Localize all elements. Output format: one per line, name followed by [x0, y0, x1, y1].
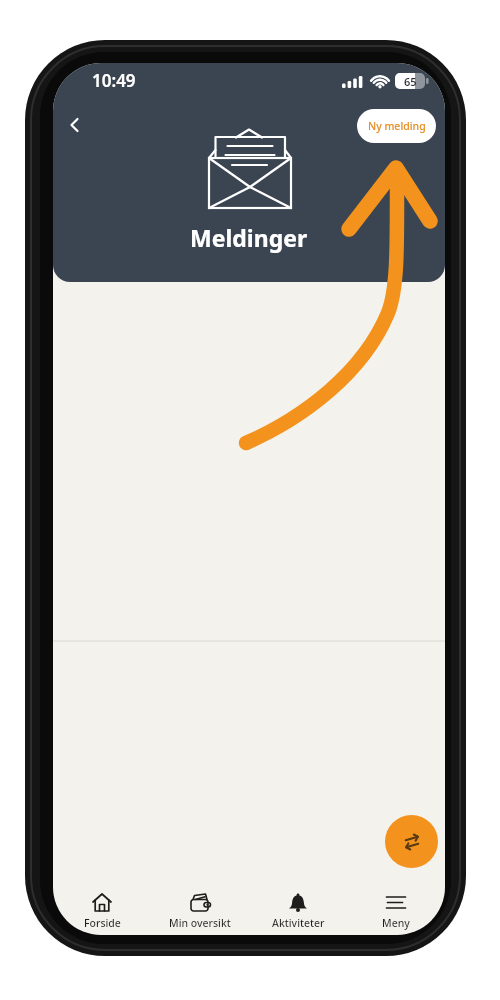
- staticText: 10:49: [92, 69, 136, 92]
- staticText: Meldinger: [190, 222, 308, 253]
- staticText: Meny: [382, 916, 410, 930]
- staticText: Min oversikt: [169, 916, 231, 930]
- button[interactable]: Min oversikt: [151, 889, 249, 935]
- staticText: Forside: [84, 916, 121, 930]
- button[interactable]: Forside: [53, 889, 151, 935]
- button[interactable]: Aktiviteter: [249, 889, 347, 935]
- staticText: Ny melding: [368, 119, 426, 133]
- button[interactable]: Meny: [347, 889, 445, 935]
- staticText: 65: [404, 74, 417, 89]
- button[interactable]: [59, 109, 93, 143]
- staticText: Aktiviteter: [272, 916, 325, 930]
- button[interactable]: [385, 815, 438, 868]
- button[interactable]: Ny melding: [357, 109, 436, 143]
